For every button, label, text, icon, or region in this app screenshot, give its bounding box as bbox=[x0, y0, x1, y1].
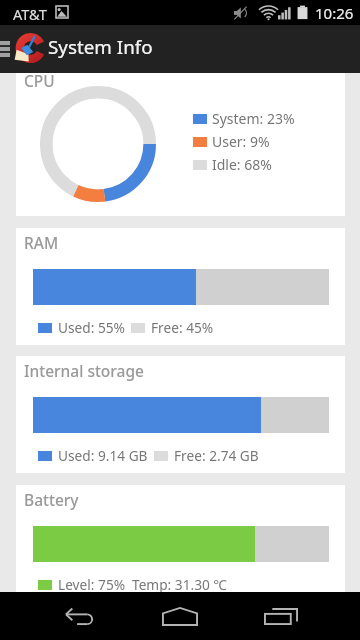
staticText: 10:26 bbox=[315, 3, 354, 23]
staticText: RAM bbox=[24, 232, 59, 253]
staticText: CPU bbox=[24, 70, 55, 91]
staticText: Used: 55% bbox=[58, 318, 125, 337]
staticText: User: 9% bbox=[212, 132, 270, 151]
staticText: AT&T bbox=[13, 4, 47, 24]
staticText: System: 23% bbox=[212, 109, 295, 128]
staticText: Internal storage bbox=[24, 360, 144, 381]
button[interactable]: Open navigation drawer bbox=[0, 25, 14, 73]
staticText: Free: 2.74 GB bbox=[174, 446, 259, 465]
staticText: Battery bbox=[24, 489, 79, 510]
button[interactable]: Back bbox=[32, 592, 128, 640]
staticText: Used: 9.14 GB bbox=[58, 446, 148, 465]
button[interactable]: CPU bbox=[16, 73, 345, 216]
staticText: Free: 45% bbox=[151, 318, 214, 337]
button[interactable]: Home bbox=[132, 592, 228, 640]
button[interactable]: Internal storage bbox=[16, 356, 345, 473]
staticText: System Info bbox=[48, 34, 153, 60]
button[interactable]: Battery bbox=[16, 485, 345, 595]
button[interactable]: Recent apps bbox=[233, 592, 329, 640]
staticText: Idle: 68% bbox=[212, 155, 272, 174]
button[interactable]: RAM bbox=[16, 228, 345, 345]
staticText: Temp: 31.30 ℃ bbox=[132, 575, 227, 594]
staticText: Level: 75% bbox=[58, 575, 126, 594]
